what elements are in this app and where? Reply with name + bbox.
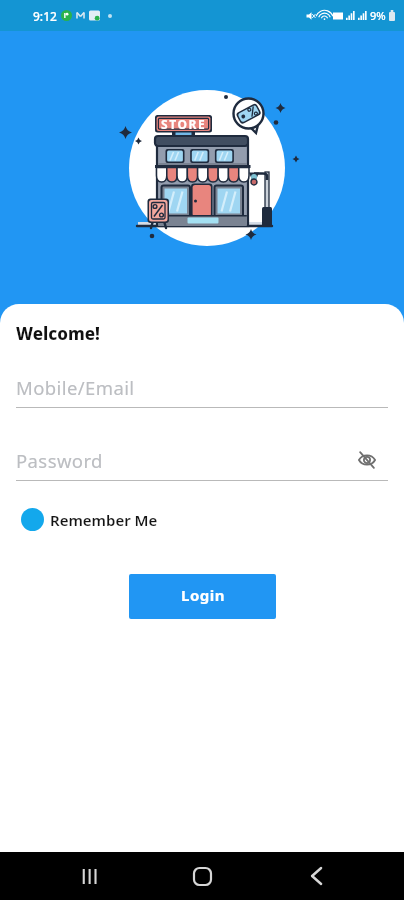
staticText: 9:12 [33, 8, 57, 24]
button[interactable]: Login [129, 574, 276, 619]
button[interactable]: Mobile/Email [16, 375, 388, 408]
button[interactable]: Back [294, 854, 338, 898]
button[interactable]: Remember Me [16, 505, 158, 534]
staticText: Mobile/Email [16, 375, 135, 400]
button[interactable]: Recent apps [67, 854, 111, 898]
button[interactable]: Show password [356, 449, 378, 471]
button[interactable]: Password [16, 448, 388, 481]
staticText: 9% [370, 8, 386, 23]
staticText: Welcome! [16, 322, 100, 345]
staticText: Password [16, 448, 103, 473]
staticText: Login [181, 585, 225, 605]
button[interactable]: Home [180, 854, 224, 898]
staticText: Remember Me [50, 510, 158, 530]
